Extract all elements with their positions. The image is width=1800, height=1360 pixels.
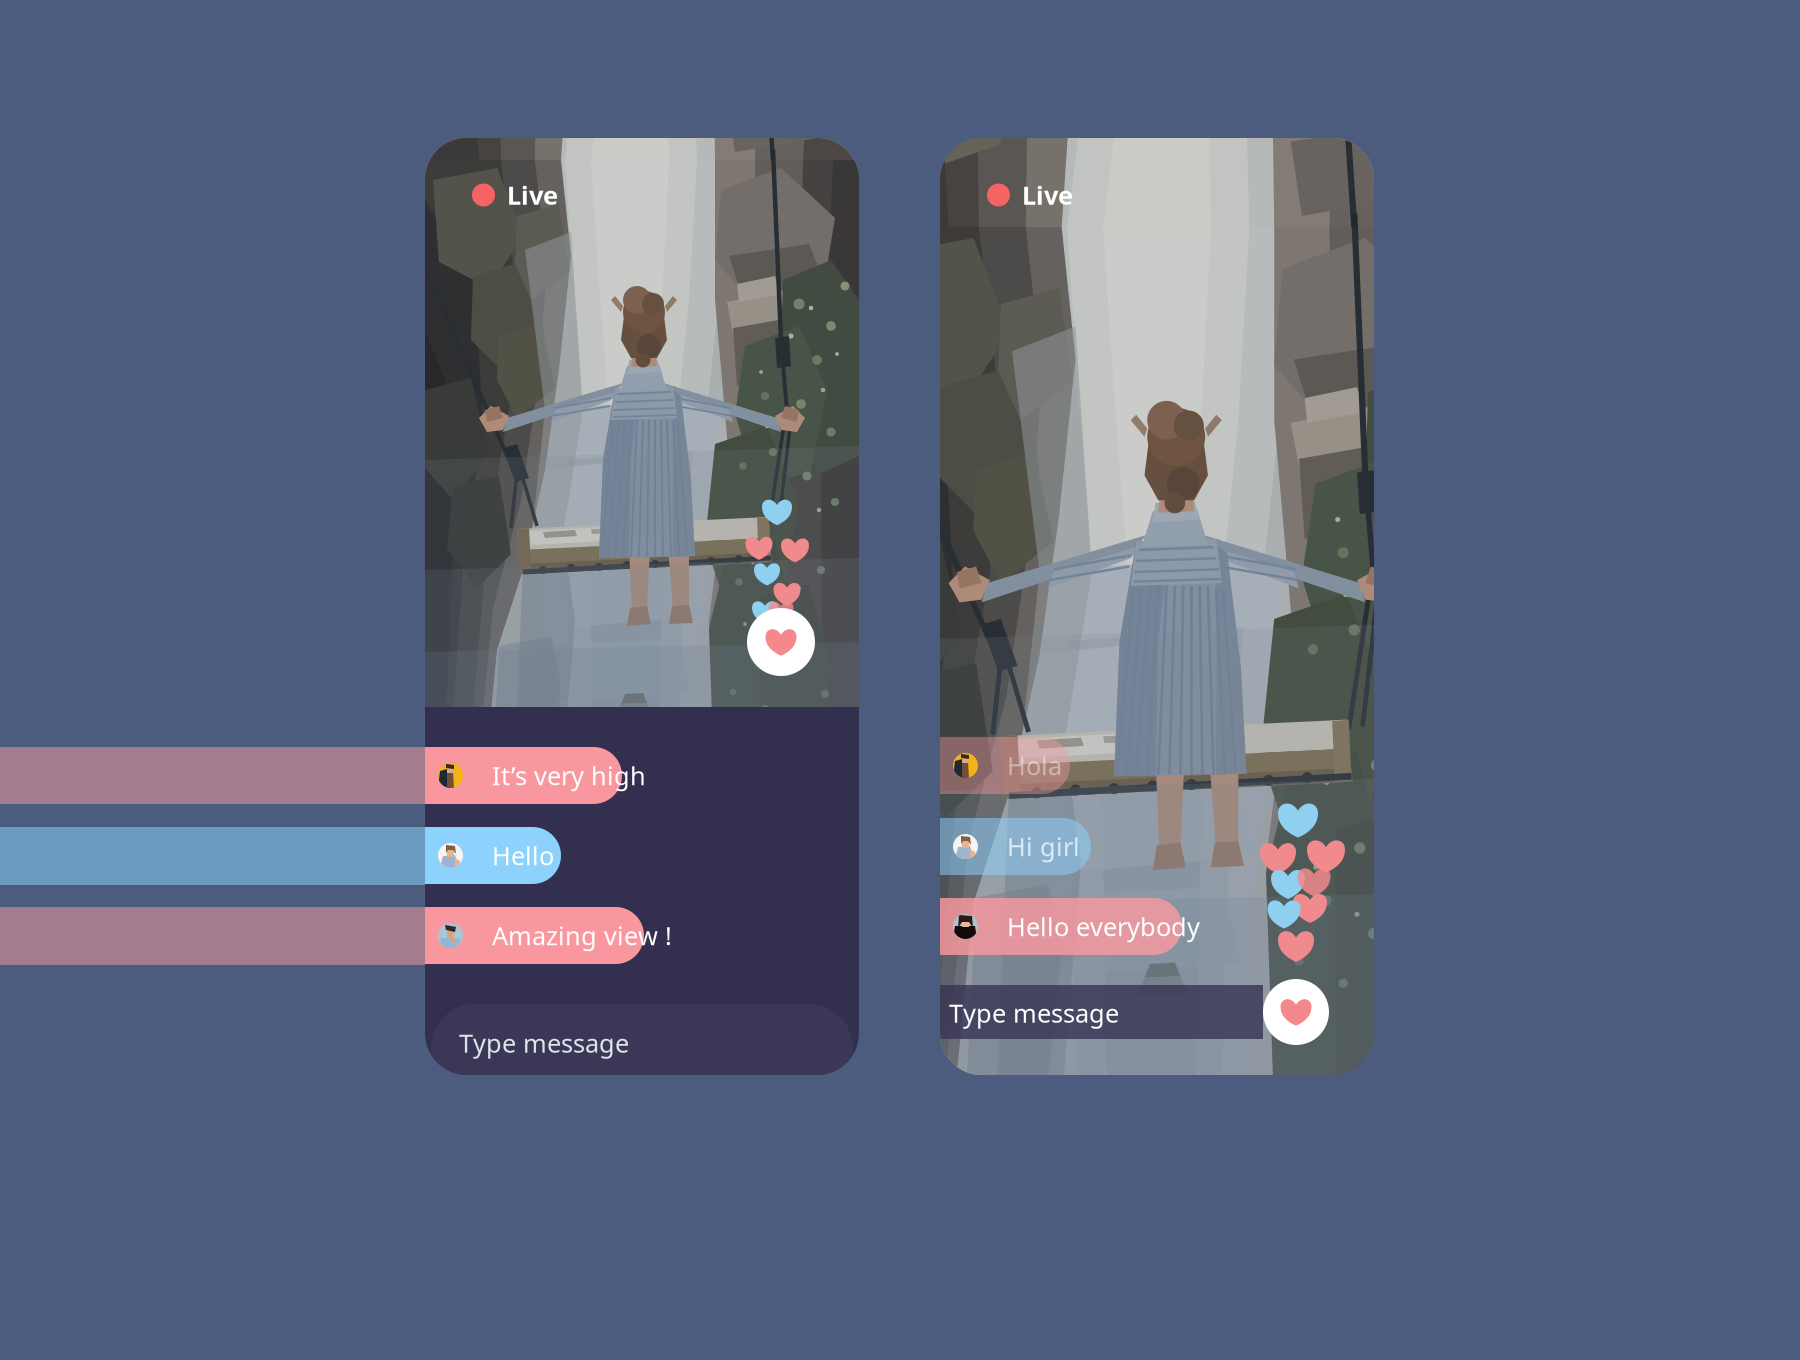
button[interactable]: Hi girl bbox=[870, 818, 1091, 875]
button[interactable]: Hello everybody bbox=[870, 898, 1182, 955]
button[interactable]: Type message bbox=[431, 1004, 853, 1144]
button[interactable]: Send a heart bbox=[1263, 979, 1329, 1045]
staticText: Type message bbox=[459, 1026, 629, 1060]
staticText: Live bbox=[507, 178, 558, 212]
button[interactable]: Hello bbox=[355, 827, 561, 884]
staticText: Amazing view ! bbox=[492, 919, 672, 952]
staticText: Hi girl bbox=[1007, 830, 1080, 863]
button[interactable]: Amazing view ! bbox=[355, 907, 644, 964]
button[interactable]: Type message bbox=[940, 985, 1263, 1039]
staticText: Hello bbox=[492, 839, 554, 872]
staticText: Type message bbox=[949, 996, 1119, 1030]
staticText: Live bbox=[1022, 178, 1073, 212]
button[interactable]: Send a heart bbox=[747, 608, 815, 676]
staticText: Hola bbox=[1007, 749, 1062, 782]
staticText: It’s very high bbox=[492, 759, 646, 792]
staticText: Hello everybody bbox=[1007, 910, 1200, 943]
button[interactable]: Hola bbox=[870, 737, 1070, 794]
button[interactable]: It’s very high bbox=[355, 747, 622, 804]
